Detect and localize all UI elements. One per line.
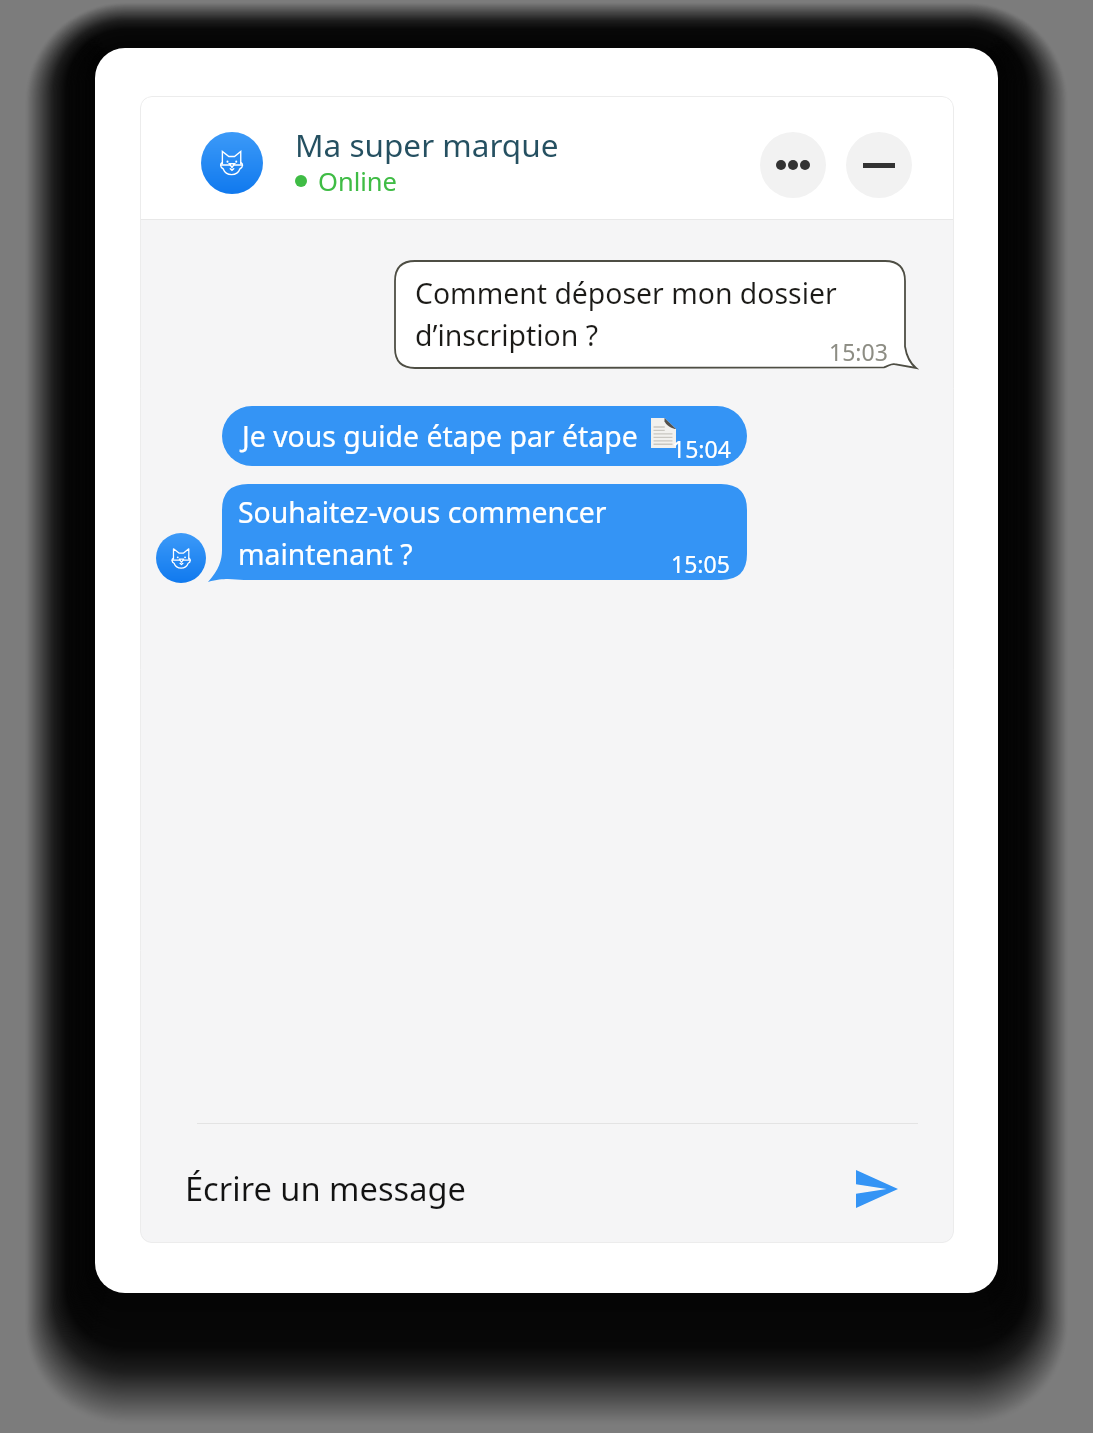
staticText: Souhaitez-vous commencer maintenant ? — [238, 493, 607, 573]
staticText: Online — [318, 164, 397, 199]
button[interactable]: More options — [760, 132, 826, 198]
button[interactable]: Souhaitez-vous commencer maintenant ? — [208, 484, 747, 580]
staticText: Ma super marque — [295, 123, 559, 166]
staticText: 15:04 — [672, 433, 731, 464]
button[interactable]: Comment déposer mon dossier d’inscriptio… — [395, 261, 915, 368]
button[interactable]: Minimize — [846, 132, 912, 198]
staticText: Écrire un message — [185, 1166, 466, 1210]
button[interactable]: Send message — [843, 1155, 911, 1223]
button[interactable]: Écrire un message — [160, 1136, 820, 1232]
button[interactable]: Je vous guide étape par étape — [222, 406, 747, 466]
staticText: 15:05 — [671, 548, 730, 579]
button[interactable]: Ma super marque, Online — [190, 114, 670, 202]
staticText: Je vous guide étape par étape — [242, 417, 638, 456]
staticText: 15:03 — [829, 336, 888, 367]
staticText: Comment déposer mon dossier d’inscriptio… — [415, 274, 837, 354]
